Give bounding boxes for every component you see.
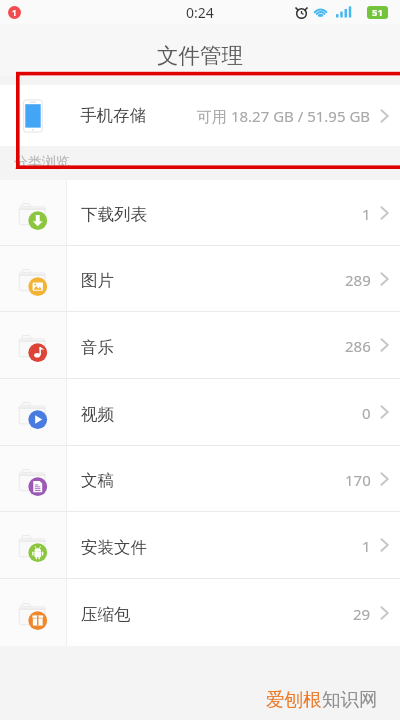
button[interactable]: 下载列表 bbox=[0, 180, 400, 246]
button[interactable]: 图片 bbox=[0, 246, 400, 312]
staticText: 爱刨根 bbox=[266, 688, 322, 711]
staticText: 1 bbox=[362, 536, 371, 556]
button[interactable]: 文稿 bbox=[0, 446, 400, 512]
staticText: 手机存储 bbox=[80, 105, 146, 126]
staticText: 压缩包 bbox=[81, 604, 131, 625]
staticText: 289 bbox=[345, 270, 371, 290]
staticText: 286 bbox=[345, 336, 371, 356]
staticText: 视频 bbox=[81, 404, 114, 425]
other: Alarm set bbox=[295, 6, 308, 19]
staticText: 音乐 bbox=[81, 337, 114, 358]
button[interactable]: 手机存储 bbox=[0, 85, 400, 146]
staticText: 文稿 bbox=[81, 470, 114, 491]
staticText: 安装文件 bbox=[81, 537, 147, 558]
staticText: 图片 bbox=[81, 270, 114, 291]
staticText: 下载列表 bbox=[81, 204, 147, 225]
staticText: 知识网 bbox=[322, 688, 378, 711]
staticText: 1 bbox=[12, 7, 17, 18]
staticText: 0 bbox=[362, 403, 371, 423]
button[interactable]: 视频 bbox=[0, 379, 400, 446]
staticText: 29 bbox=[353, 604, 371, 624]
button[interactable]: 安装文件 bbox=[0, 512, 400, 579]
button[interactable]: 音乐 bbox=[0, 312, 400, 379]
staticText: 可用 18.27 GB / 51.95 GB bbox=[197, 106, 371, 126]
other: Wi-Fi connected bbox=[313, 7, 328, 19]
staticText: 0:24 bbox=[186, 3, 214, 22]
button[interactable]: 压缩包 bbox=[0, 579, 400, 646]
staticText: 170 bbox=[345, 470, 371, 490]
staticText: 51 bbox=[372, 6, 383, 19]
staticText: 文件管理 bbox=[157, 42, 243, 69]
staticText: 分类浏览 bbox=[14, 154, 70, 172]
staticText: 1 bbox=[362, 204, 371, 224]
other: Mobile signal bbox=[336, 7, 353, 19]
